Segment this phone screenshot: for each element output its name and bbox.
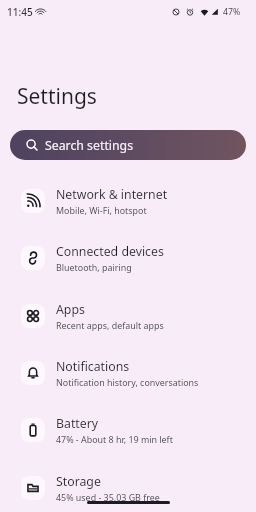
staticText: Network & internet <box>56 186 168 203</box>
staticText: Storage <box>56 473 101 490</box>
staticText: 11:45 <box>7 5 33 19</box>
staticText: 47% <box>223 6 241 18</box>
staticText: 47% - About 8 hr, 19 min left <box>56 433 173 445</box>
staticText: Settings <box>17 82 97 111</box>
staticText: Notification history, conversations <box>56 376 199 388</box>
button[interactable]: Notifications <box>0 344 256 401</box>
staticText: 45% used - 35.03 GB free <box>56 491 160 503</box>
staticText: Mobile, Wi-Fi, hotspot <box>56 204 147 216</box>
staticText: Notifications <box>56 358 130 375</box>
staticText: Bluetooth, pairing <box>56 261 132 273</box>
staticText: Connected devices <box>56 243 164 260</box>
button[interactable]: Network & internet <box>0 172 256 229</box>
button[interactable]: Battery <box>0 401 256 458</box>
staticText: Search settings <box>45 137 134 154</box>
button[interactable]: Storage <box>0 459 256 512</box>
button[interactable]: Connected devices <box>0 229 256 286</box>
button[interactable]: Apps <box>0 287 256 344</box>
staticText: Battery <box>56 415 99 432</box>
button[interactable]: Search settings <box>10 130 246 160</box>
staticText: Apps <box>56 301 85 318</box>
staticText: Recent apps, default apps <box>56 319 164 331</box>
